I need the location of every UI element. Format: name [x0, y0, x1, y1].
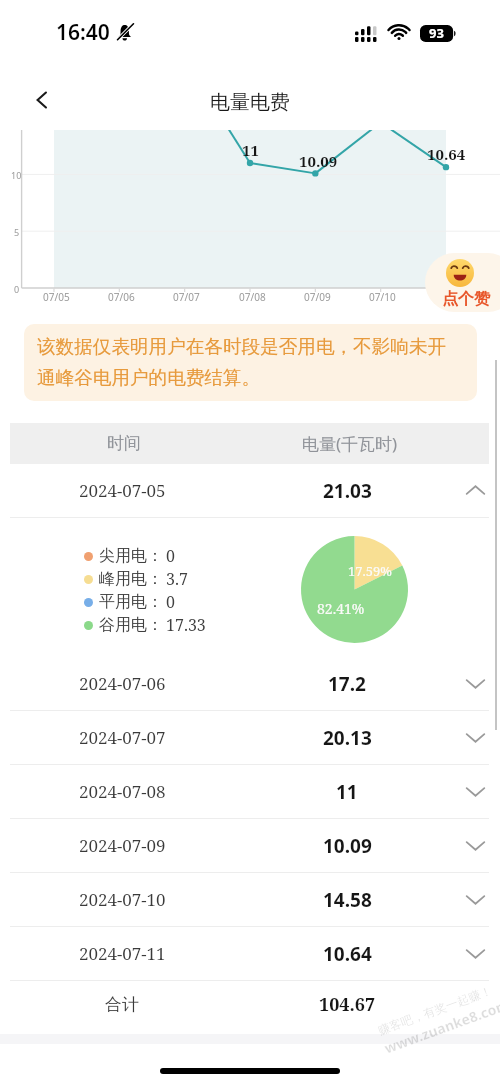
staticText: 2024-07-11: [79, 942, 166, 965]
staticText: 21.03: [323, 478, 372, 504]
staticText: 07/07: [173, 290, 200, 304]
staticText: 07/10: [369, 290, 396, 304]
button[interactable]: 2024-07-05: [0, 464, 500, 517]
staticText: 5: [14, 226, 20, 238]
staticText: 10.64: [427, 144, 466, 164]
staticText: 2024-07-08: [79, 780, 166, 803]
button[interactable]: 2024-07-11: [0, 927, 500, 980]
staticText: 10: [11, 169, 22, 181]
staticText: 07/06: [108, 290, 135, 304]
staticText: 07/11: [435, 290, 462, 304]
button[interactable]: Like: [425, 253, 500, 312]
staticText: 07/08: [239, 290, 266, 304]
staticText: 93: [429, 24, 444, 42]
staticText: 2024-07-06: [79, 672, 166, 695]
staticText: 电量(千瓦时): [302, 432, 398, 455]
staticText: 点个赞: [442, 289, 490, 309]
staticText: 该数据仅表明用户在各时段是否用电，不影响未开通峰谷电用户的电费结算。: [37, 335, 464, 390]
button[interactable]: 2024-07-08: [0, 765, 500, 818]
staticText: 3.7: [166, 568, 188, 590]
staticText: 时间: [107, 433, 141, 454]
staticText: 平用电：: [99, 592, 163, 612]
staticText: 17.2: [328, 671, 366, 697]
staticText: 17.33: [166, 614, 206, 636]
staticText: 20.13: [323, 725, 372, 751]
staticText: 10.09: [299, 151, 338, 171]
staticText: 电量电费: [210, 90, 290, 115]
staticText: 0: [166, 591, 175, 613]
staticText: 0: [166, 545, 175, 567]
staticText: 2024-07-07: [79, 726, 166, 749]
staticText: 14.58: [323, 887, 372, 913]
button[interactable]: 2024-07-06: [0, 657, 500, 710]
staticText: 2024-07-09: [79, 834, 166, 857]
staticText: 16:40: [56, 18, 110, 47]
staticText: 2024-07-05: [79, 479, 166, 502]
staticText: 82.41%: [317, 599, 365, 618]
staticText: 峰用电：: [99, 569, 163, 589]
staticText: 谷用电：: [99, 615, 163, 635]
staticText: 2024-07-10: [79, 888, 166, 911]
staticText: 11: [336, 779, 358, 805]
button[interactable]: 2024-07-10: [0, 873, 500, 926]
staticText: 07/05: [43, 290, 70, 304]
button[interactable]: Back: [22, 80, 62, 120]
staticText: 11: [242, 140, 259, 160]
staticText: 尖用电：: [99, 546, 163, 566]
staticText: www.zuanke8.com: [382, 994, 500, 1057]
staticText: 17.59%: [348, 562, 392, 580]
staticText: 10.09: [323, 833, 372, 859]
button[interactable]: 2024-07-07: [0, 711, 500, 764]
staticText: 07/09: [304, 290, 331, 304]
staticText: 0: [14, 283, 20, 295]
staticText: 合计: [105, 994, 139, 1015]
button[interactable]: 2024-07-09: [0, 819, 500, 872]
staticText: 104.67: [319, 992, 376, 1017]
staticText: 10.64: [323, 941, 372, 967]
staticText: 赚客吧，有奖一起赚！: [376, 983, 494, 1038]
